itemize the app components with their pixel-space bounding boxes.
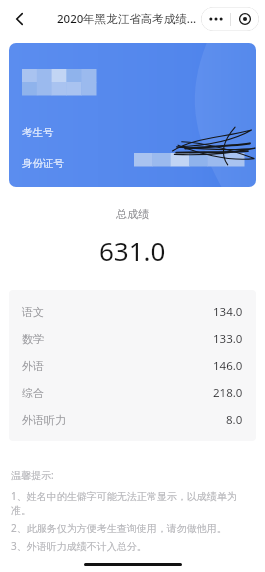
staticText: 温馨提示: xyxy=(11,468,54,482)
staticText: 综合 xyxy=(22,386,44,400)
button[interactable]: 综合 xyxy=(9,379,256,406)
button[interactable]: 考生号 xyxy=(9,43,256,187)
button[interactable]: More xyxy=(201,7,230,31)
staticText: 134.0 xyxy=(213,304,243,320)
staticText: 总成绩 xyxy=(116,207,149,221)
button[interactable]: 外语 xyxy=(9,352,256,379)
button[interactable]: Back xyxy=(6,5,34,33)
staticText: 身份证号 xyxy=(22,157,64,170)
staticText: 外语 xyxy=(22,359,44,373)
staticText: 8.0 xyxy=(226,412,243,428)
staticText: 2、此服务仅为方便考生查询使用，请勿做他用。 xyxy=(11,521,227,535)
button[interactable]: 外语听力 xyxy=(9,406,256,433)
staticText: 2020年黑龙江省高考成绩... xyxy=(57,11,197,27)
staticText: 631.0 xyxy=(99,233,166,268)
staticText: 语文 xyxy=(22,305,44,319)
staticText: 外语听力 xyxy=(22,413,66,427)
staticText: 1、姓名中的生僻字可能无法正常显示，以成绩单为准。 xyxy=(11,489,254,517)
staticText: 考生号 xyxy=(22,126,54,139)
staticText: 218.0 xyxy=(213,385,243,401)
staticText: 3、外语听力成绩不计入总分。 xyxy=(11,539,147,553)
staticText: 133.0 xyxy=(213,331,243,347)
button[interactable]: Close mini program xyxy=(231,7,259,31)
button[interactable]: 语文 xyxy=(9,298,256,325)
staticText: 数学 xyxy=(22,332,44,346)
button[interactable]: 数学 xyxy=(9,325,256,352)
staticText: 146.0 xyxy=(213,358,243,374)
